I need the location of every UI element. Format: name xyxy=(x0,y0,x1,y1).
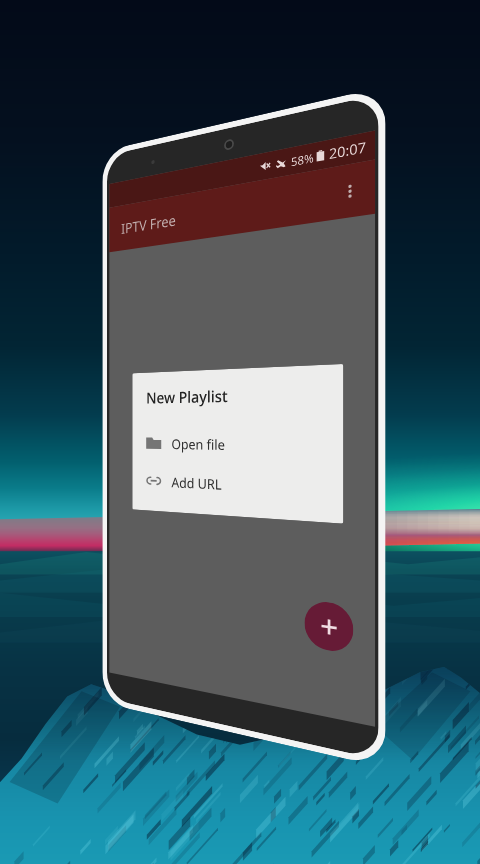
staticText: Open file xyxy=(171,435,225,454)
button[interactable]: Open file xyxy=(146,424,330,467)
staticText: Add URL xyxy=(171,473,222,494)
staticText: 58% xyxy=(291,149,314,169)
button[interactable]: More options xyxy=(330,168,370,214)
button[interactable]: Add URL xyxy=(146,462,330,510)
staticText: New Playlist xyxy=(146,385,228,408)
staticText: 20:07 xyxy=(329,137,367,163)
button[interactable]: Add xyxy=(304,599,353,654)
staticText: IPTV Free xyxy=(121,210,177,238)
